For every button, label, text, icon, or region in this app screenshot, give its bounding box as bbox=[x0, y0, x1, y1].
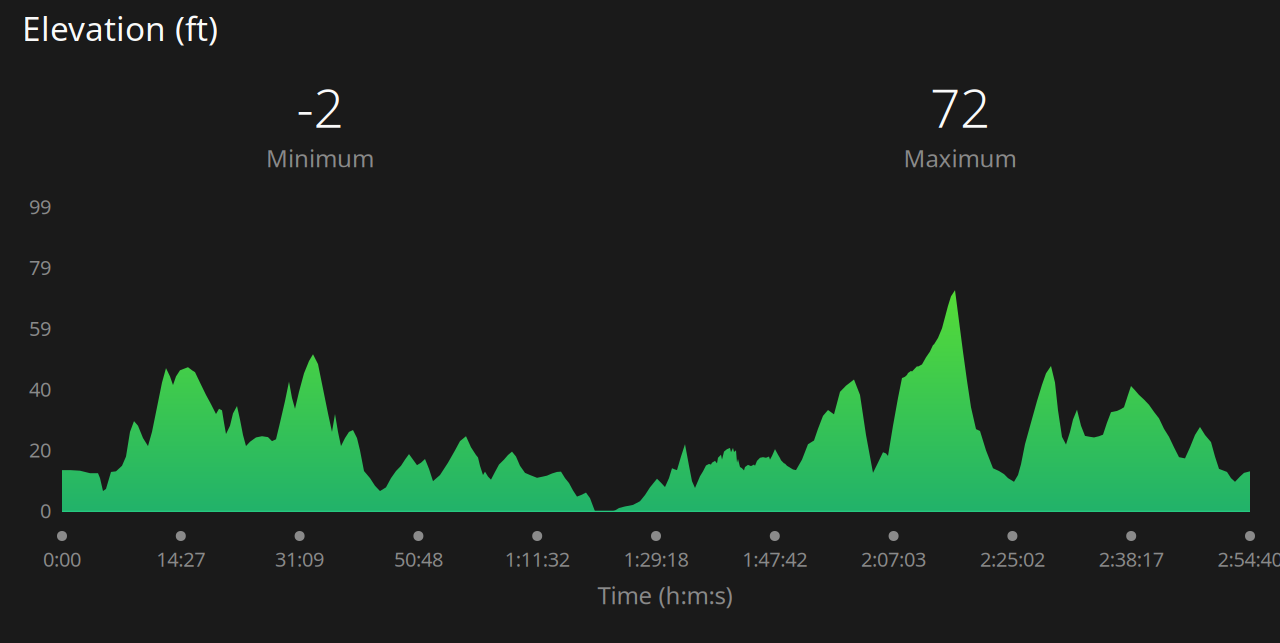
staticText: 14:27 bbox=[156, 546, 205, 572]
staticText: 1:29:18 bbox=[623, 546, 688, 572]
staticText: Maximum bbox=[903, 142, 1016, 174]
staticText: 0 bbox=[40, 497, 51, 524]
staticText: 2:07:03 bbox=[861, 546, 926, 572]
button[interactable]: -2 bbox=[120, 78, 520, 180]
staticText: 59 bbox=[29, 315, 51, 341]
staticText: Time (h:m:s) bbox=[597, 579, 732, 611]
staticText: 2:54:40 bbox=[1217, 546, 1280, 572]
staticText: 0:00 bbox=[43, 546, 81, 572]
staticText: 40 bbox=[29, 376, 51, 402]
button[interactable]: 72 bbox=[760, 78, 1160, 180]
staticText: 1:47:42 bbox=[742, 546, 807, 572]
staticText: Minimum bbox=[266, 142, 374, 174]
staticText: 31:09 bbox=[275, 546, 324, 572]
staticText: 50:48 bbox=[394, 546, 443, 572]
staticText: Elevation (ft) bbox=[22, 6, 218, 50]
staticText: 99 bbox=[29, 193, 51, 220]
staticText: 72 bbox=[930, 72, 990, 142]
staticText: -2 bbox=[296, 72, 343, 142]
staticText: 20 bbox=[29, 436, 51, 463]
staticText: 2:38:17 bbox=[1099, 546, 1164, 572]
staticText: 2:25:02 bbox=[980, 546, 1045, 572]
staticText: 79 bbox=[29, 254, 51, 281]
staticText: 1:11:32 bbox=[505, 546, 570, 572]
